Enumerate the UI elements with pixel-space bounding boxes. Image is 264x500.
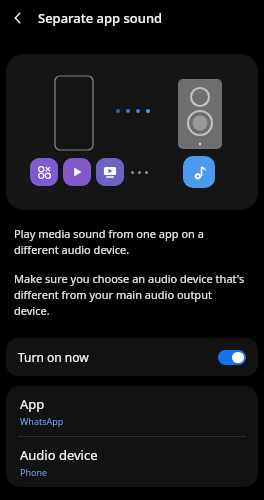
button[interactable]: Media player [63,158,91,186]
staticText: Play media sound from one app on a diffe… [14,226,250,257]
staticText: WhatsApp [20,415,64,427]
button[interactable]: Audio device [6,437,258,487]
staticText: Turn on now [18,349,89,365]
button[interactable]: Game Launcher [30,158,58,186]
staticText: App [20,395,45,413]
staticText: Phone [20,466,48,478]
staticText: Make sure you choose an audio device tha… [14,271,250,318]
button[interactable]: Video app [96,158,124,186]
button[interactable]: Back [0,0,36,36]
button[interactable]: Music [183,156,215,188]
staticText: Separate app sound [38,9,163,27]
button[interactable]: Turn on now [6,338,258,376]
button[interactable]: App [6,386,258,436]
staticText: Audio device [20,446,98,464]
